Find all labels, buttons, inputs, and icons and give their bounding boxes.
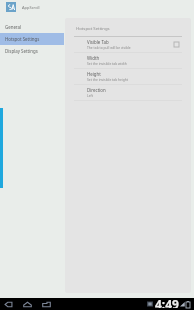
button[interactable]: Visible Tab [65,37,191,52]
button[interactable]: Width [65,53,191,68]
staticText: Hotspot Settings [5,36,40,42]
staticText: Left [87,93,93,97]
staticText: Hotspot Settings [76,25,110,31]
button[interactable]: Display Settings [0,45,64,57]
staticText: The tab to pull will be visible [87,45,131,49]
staticText: AppScroll [22,5,40,10]
other: App icon [6,2,16,12]
staticText: Direction [87,87,106,93]
staticText: Visible Tab [87,39,109,45]
button[interactable]: Home [23,301,32,308]
button[interactable]: Height [65,69,191,84]
staticText: Set the invisible tab height [87,77,129,81]
button[interactable]: Recent apps [42,301,51,308]
staticText: Display Settings [5,48,38,54]
staticText: Height [87,71,101,77]
button[interactable]: General [0,21,64,33]
staticText: Width [87,55,100,61]
staticText: General [5,24,22,30]
staticText: 4:49 [155,296,179,308]
button[interactable]: Hotspot Settings [0,33,64,45]
staticText: Set the invisible tab width [87,61,127,65]
button[interactable]: Back [4,301,13,308]
button[interactable]: Direction [65,85,191,100]
